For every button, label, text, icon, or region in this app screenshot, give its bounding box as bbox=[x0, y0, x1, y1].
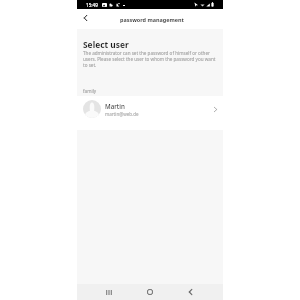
staticText: Martin bbox=[105, 102, 125, 110]
staticText: martin@web.de bbox=[105, 111, 139, 117]
button[interactable]: Martin bbox=[77, 96, 223, 130]
staticText: Select user bbox=[83, 39, 129, 50]
button[interactable]: Recent apps bbox=[89, 284, 129, 300]
staticText: family bbox=[83, 88, 97, 94]
button[interactable]: Back bbox=[170, 284, 211, 300]
staticText: The administrator can set the password o… bbox=[83, 50, 219, 68]
staticText: password management bbox=[120, 16, 184, 23]
button[interactable]: Navigate back bbox=[77, 10, 93, 26]
button[interactable]: Home bbox=[129, 284, 170, 300]
staticText: 15:49 bbox=[86, 2, 98, 8]
